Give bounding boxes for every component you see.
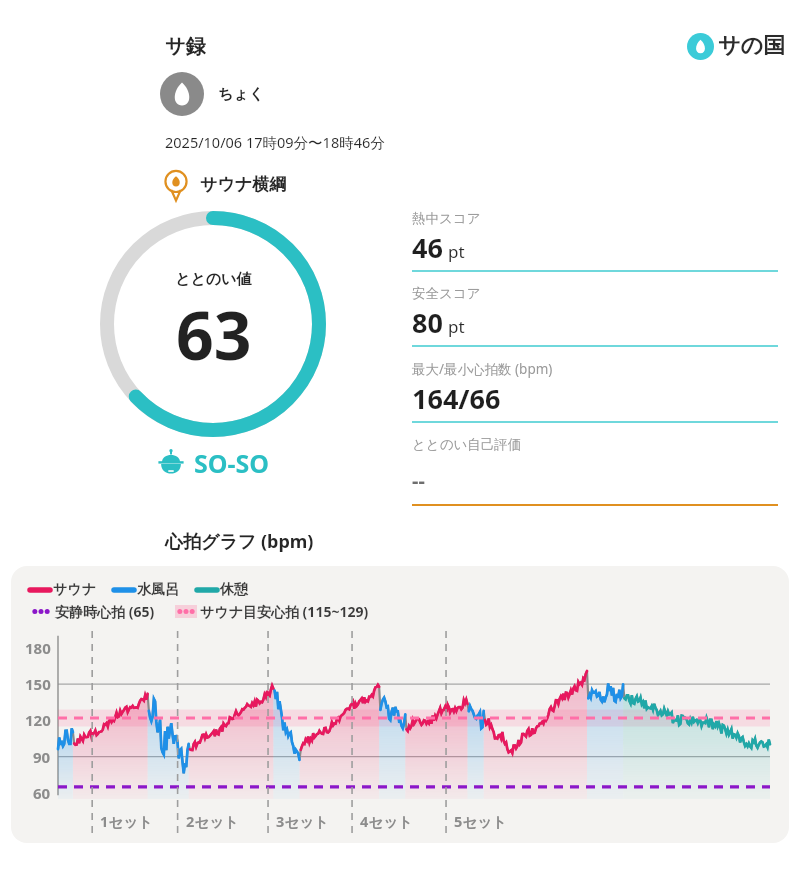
staticText: 1セット bbox=[100, 811, 153, 831]
staticText: サ録 bbox=[165, 34, 206, 59]
button[interactable]: サウナ横綱 bbox=[160, 168, 287, 200]
button[interactable]: 最大/最小心拍数 (bpm) bbox=[412, 360, 778, 436]
staticText: 5セット bbox=[454, 811, 507, 831]
button[interactable]: ととのい値 bbox=[99, 210, 327, 438]
button[interactable]: 安全スコア bbox=[412, 285, 778, 360]
staticText: 水風呂 bbox=[137, 581, 179, 599]
staticText: 180 bbox=[25, 638, 51, 658]
staticText: 休憩 bbox=[220, 581, 248, 599]
staticText: 164/66 bbox=[412, 380, 501, 417]
staticText: 63 bbox=[176, 289, 252, 379]
staticText: サウナ横綱 bbox=[200, 174, 287, 195]
staticText: 安全スコア bbox=[412, 285, 481, 302]
staticText: 120 bbox=[25, 710, 51, 730]
staticText: 80 bbox=[412, 304, 443, 341]
staticText: ちょく bbox=[218, 85, 265, 104]
button[interactable]: ととのい自己評価 bbox=[412, 436, 778, 519]
button[interactable]: 熱中スコア bbox=[412, 210, 778, 285]
staticText: 最大/最小心拍数 (bpm) bbox=[412, 360, 553, 378]
staticText: SO-SO bbox=[194, 446, 270, 480]
staticText: ととのい値 bbox=[175, 270, 252, 289]
staticText: 46 bbox=[412, 229, 443, 266]
staticText: 3セット bbox=[276, 811, 329, 831]
staticText: 2025/10/06 17時09分〜18時46分 bbox=[165, 132, 385, 152]
staticText: 150 bbox=[25, 674, 51, 694]
button[interactable]: ちょく bbox=[160, 72, 265, 116]
staticText: 2セット bbox=[186, 811, 239, 831]
staticText: 4セット bbox=[360, 811, 413, 831]
staticText: サウナ bbox=[53, 581, 96, 599]
other: サの国 ロゴ bbox=[687, 33, 714, 60]
staticText: ととのい自己評価 bbox=[412, 436, 522, 453]
staticText: -- bbox=[412, 467, 425, 494]
staticText: pt bbox=[448, 315, 465, 338]
staticText: 熱中スコア bbox=[412, 210, 481, 227]
staticText: 安静時心拍 (65) bbox=[55, 602, 155, 621]
staticText: サの国 bbox=[718, 32, 786, 60]
button[interactable]: サの国 ロゴ bbox=[687, 32, 786, 60]
staticText: サウナ目安心拍 (115~129) bbox=[200, 602, 369, 621]
staticText: 60 bbox=[33, 783, 51, 803]
staticText: pt bbox=[448, 240, 465, 263]
staticText: 90 bbox=[33, 747, 51, 767]
staticText: 心拍グラフ (bpm) bbox=[165, 529, 314, 554]
button[interactable]: サウナ bbox=[11, 566, 789, 843]
button[interactable]: SO-SO bbox=[156, 446, 270, 480]
